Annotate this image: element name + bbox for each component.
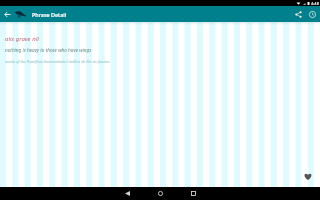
staticText: motto of the Pontifícia Universidade Cat… [5,59,110,64]
staticText: 4:48 [311,1,319,6]
button[interactable]: Back [117,187,137,200]
button[interactable]: Share [291,7,305,21]
button[interactable]: History [305,7,319,21]
staticText: alis grave nil [5,35,39,43]
button[interactable]: Navigate up [0,7,14,21]
button[interactable]: Recent apps [183,187,203,200]
staticText: nothing is heavy to those who have wings [5,47,92,53]
staticText: Phrase Detail [32,11,67,18]
button[interactable]: Home [150,187,170,200]
button[interactable]: Favorite [303,171,313,181]
